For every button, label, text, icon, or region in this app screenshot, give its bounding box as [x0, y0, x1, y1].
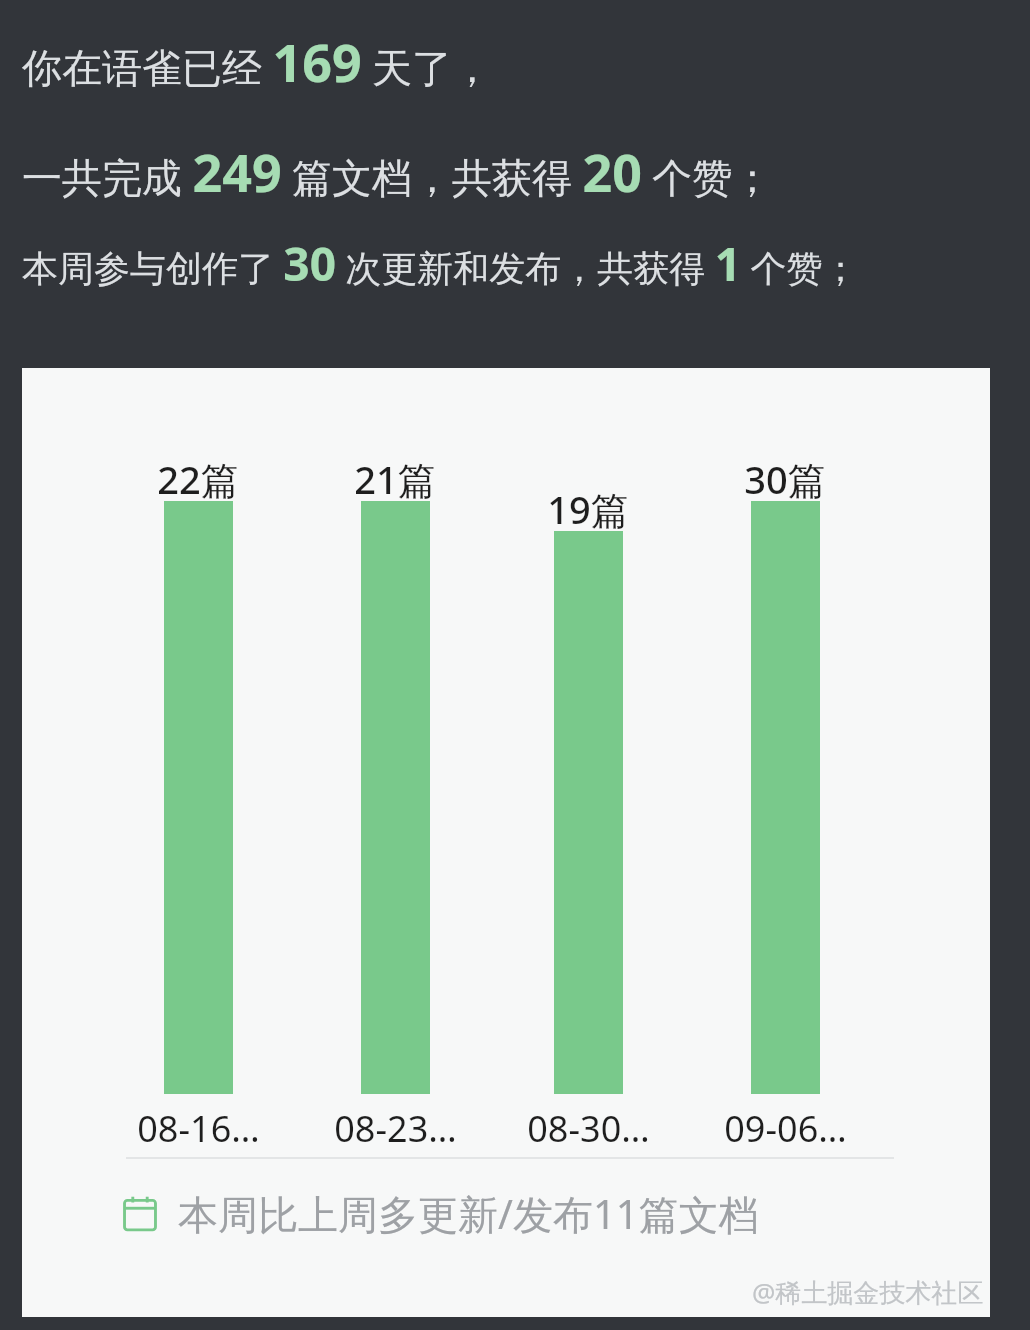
staticText: 22篇	[157, 453, 239, 505]
staticText: 08-16…	[137, 1104, 260, 1153]
other: Calendar	[122, 1196, 158, 1232]
button[interactable]: 22篇	[22, 368, 990, 1317]
staticText: 30篇	[744, 453, 826, 505]
staticText: 一共完成 249 篇文档，共获得 20 个赞；	[22, 136, 773, 207]
staticText: 19篇	[547, 483, 629, 535]
staticText: 08-30…	[527, 1104, 650, 1153]
staticText: 08-23…	[334, 1104, 457, 1153]
staticText: 你在语雀已经 169 天了，	[22, 26, 493, 97]
staticText: @稀土掘金技术社区	[752, 1274, 984, 1310]
staticText: 本周参与创作了 30 次更新和发布，共获得 1 个赞；	[22, 232, 859, 295]
staticText: 09-06…	[724, 1104, 847, 1153]
button[interactable]: Calendar	[122, 1186, 759, 1241]
staticText: 本周比上周多更新/发布11篇文档	[178, 1186, 759, 1241]
staticText: 21篇	[354, 453, 436, 505]
